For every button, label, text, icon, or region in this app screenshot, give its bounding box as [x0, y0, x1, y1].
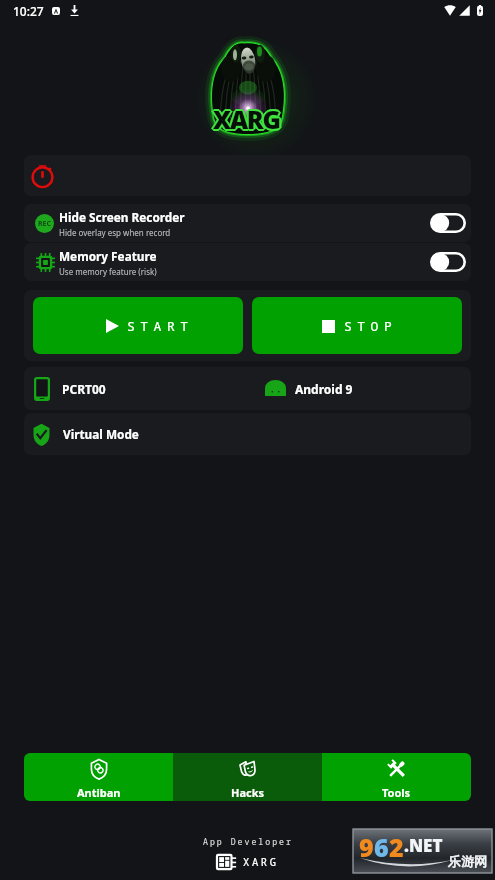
staticText: STOP	[344, 317, 398, 335]
staticText: 10:27	[13, 3, 44, 19]
staticText: Antiban	[77, 785, 121, 800]
staticText: XARG	[212, 103, 279, 137]
button[interactable]: PCRT00	[24, 367, 471, 410]
staticText: XARG	[213, 104, 280, 138]
button[interactable]: REC	[24, 204, 471, 242]
staticText: XARG	[213, 100, 280, 134]
staticText: XARG	[213, 103, 280, 137]
staticText: Use memory feature (risk)	[59, 266, 157, 277]
button[interactable]: Hacks	[173, 753, 322, 801]
button[interactable]: STOP	[252, 297, 462, 354]
staticText: 6	[374, 830, 389, 864]
staticText: XARG	[214, 101, 281, 135]
staticText: Hide overlay esp when record	[59, 227, 171, 238]
button[interactable]: START	[33, 297, 243, 354]
staticText: App Developer	[203, 836, 293, 847]
staticText: PCRT00	[62, 381, 106, 397]
staticText: START	[127, 317, 194, 335]
staticText: XARG	[213, 102, 280, 136]
staticText: 2	[389, 830, 404, 864]
staticText: XARG	[214, 103, 281, 137]
staticText: Android 9	[295, 381, 353, 397]
button[interactable]: Memory Feature	[430, 252, 466, 272]
button[interactable]: Timer	[24, 155, 471, 196]
staticText: XARG	[214, 102, 281, 136]
staticText: .NET	[404, 834, 443, 857]
staticText: XARG	[213, 101, 280, 135]
staticText: XARG	[212, 101, 279, 135]
button[interactable]: Tools	[322, 753, 471, 801]
staticText: Virtual Mode	[63, 426, 139, 442]
staticText: 9	[359, 830, 374, 864]
staticText: Tools	[382, 785, 411, 800]
staticText: XARG	[212, 102, 279, 136]
staticText: Hide Screen Recorder	[59, 209, 185, 225]
staticText: XARG	[215, 102, 282, 136]
staticText: 乐游网	[448, 853, 487, 869]
staticText: REC	[38, 219, 52, 229]
staticText: XARG	[243, 855, 279, 869]
staticText: Hacks	[231, 785, 265, 800]
button[interactable]: Memory Feature	[24, 243, 471, 281]
staticText: XARG	[211, 102, 278, 136]
button[interactable]: Virtual Mode	[24, 413, 471, 455]
button[interactable]: Antiban	[24, 753, 173, 801]
staticText: Memory Feature	[59, 248, 157, 264]
button[interactable]: Hide Screen Recorder	[430, 213, 466, 233]
